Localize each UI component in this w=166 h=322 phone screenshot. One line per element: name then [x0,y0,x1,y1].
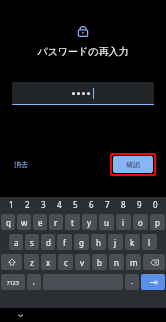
button[interactable]: k [125,234,140,250]
button[interactable]: 4 [51,197,67,212]
staticText: パスワードの再入力 [0,45,166,58]
staticText: 7 [105,199,110,210]
button[interactable]: c [58,254,73,270]
button[interactable]: 確認 [113,156,153,173]
button[interactable]: z [24,254,39,270]
staticText: e [38,217,43,228]
button[interactable]: x [41,254,56,270]
staticText: 2 [25,199,30,210]
button[interactable]: d [41,234,55,250]
button[interactable]: 9 [131,197,147,212]
staticText: 8 [121,199,126,210]
button[interactable]: o [133,214,148,230]
staticText: t [71,217,74,228]
button[interactable]: i [116,214,131,230]
button[interactable]: 1 [3,197,19,212]
staticText: j [114,237,117,248]
staticText: z [30,257,34,268]
button[interactable]: b [92,254,107,270]
staticText: a [14,237,19,248]
staticText: u [104,217,109,228]
button[interactable]: e [33,214,47,230]
button[interactable]: l [142,234,157,250]
button[interactable]: 0 [147,197,163,212]
button[interactable]: y [82,214,97,230]
button[interactable]: t [65,214,80,230]
staticText: 0 [153,199,158,210]
staticText: f [63,237,66,248]
staticText: g [79,237,84,248]
button[interactable]: 6 [83,197,99,212]
button[interactable]: p [150,214,165,230]
button[interactable]: n [109,254,124,270]
staticText: 消去 [14,160,28,169]
staticText: m [130,257,138,268]
staticText: , [33,277,35,287]
staticText: 6 [89,199,94,210]
staticText: l [148,237,151,248]
staticText: o [138,217,143,228]
staticText: r [54,217,58,228]
staticText: x [46,257,51,268]
button[interactable]: r [49,214,63,230]
button[interactable]: w [17,214,31,230]
button[interactable]: ?123 [1,274,25,290]
button[interactable]: 8 [115,197,131,212]
staticText: d [46,237,51,248]
staticText: 5 [73,199,78,210]
button[interactable]: , [27,274,41,290]
staticText: 9 [137,199,142,210]
staticText: 3 [41,199,46,210]
button[interactable]: j [108,234,123,250]
button[interactable]: 5 [67,197,83,212]
button[interactable]: Hide keyboard [14,309,26,321]
staticText: y [87,217,92,228]
button[interactable]: s [25,234,39,250]
button[interactable]: Enter [141,274,165,290]
staticText: w [21,217,28,228]
staticText: n [114,257,119,268]
staticText: h [96,237,101,248]
staticText: 確認 [126,160,140,169]
staticText: k [130,237,135,248]
button[interactable]: . [125,274,139,290]
staticText: ?123 [7,279,19,286]
button[interactable]: 7 [99,197,115,212]
staticText: i [122,217,125,228]
button[interactable]: 3 [35,197,51,212]
staticText: 4 [57,199,62,210]
staticText: v [80,257,85,268]
button[interactable]: v [75,254,90,270]
staticText: . [131,277,133,287]
staticText: 1 [9,199,14,210]
staticText: q [6,217,11,228]
button[interactable]: f [57,234,72,250]
button[interactable]: g [74,234,89,250]
button[interactable] [12,82,154,105]
button[interactable]: 消去 [10,156,32,173]
staticText: p [155,217,160,228]
staticText: s [30,237,34,248]
button[interactable]: Backspace [143,254,165,270]
button[interactable]: h [91,234,106,250]
button[interactable]: 2 [19,197,35,212]
button[interactable]: Shift [1,254,22,270]
button[interactable]: u [99,214,114,230]
button[interactable]: m [126,254,141,270]
button[interactable]: a [9,234,23,250]
staticText: b [97,257,102,268]
button[interactable]: q [1,214,15,230]
staticText: c [64,257,68,268]
